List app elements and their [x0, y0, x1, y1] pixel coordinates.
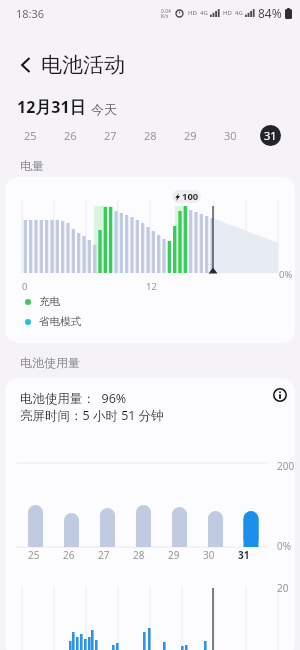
button[interactable]: Info — [267, 382, 293, 408]
staticText: 31 — [264, 128, 277, 143]
staticText: 25 — [28, 548, 40, 562]
staticText: 亮屏时间：5 小时 51 分钟 — [20, 407, 164, 424]
staticText: 0% — [279, 268, 293, 281]
staticText: 27 — [104, 128, 117, 143]
button[interactable]: 27 — [90, 122, 130, 148]
button[interactable]: Back — [14, 52, 36, 78]
staticText: 100 — [182, 190, 199, 203]
staticText: 200 — [277, 459, 295, 473]
button[interactable]: 28 — [130, 122, 170, 148]
staticText: 31 — [238, 548, 250, 562]
button[interactable]: 29 — [170, 122, 210, 148]
staticText: 12月31日 — [17, 96, 86, 118]
button[interactable]: 26 — [50, 122, 90, 148]
staticText: 0% — [277, 539, 292, 553]
staticText: 18:36 — [16, 6, 45, 21]
staticText: 0.04 K/s — [161, 8, 171, 19]
staticText: 26 — [63, 548, 75, 562]
staticText: HD — [188, 9, 197, 17]
staticText: 27 — [98, 548, 110, 562]
staticText: HD — [223, 9, 232, 17]
button[interactable]: 30 — [210, 122, 250, 148]
staticText: 28 — [133, 548, 145, 562]
staticText: 30 — [203, 548, 215, 562]
staticText: 4G — [235, 9, 243, 17]
staticText: 充电 — [39, 295, 60, 308]
button[interactable]: 25 — [10, 122, 50, 148]
staticText: 25 — [24, 128, 37, 143]
staticText: 电池使用量 — [20, 355, 80, 370]
staticText: 29 — [168, 548, 180, 562]
staticText: 12 — [146, 280, 157, 293]
staticText: 电池使用量： 96% — [20, 390, 127, 407]
button[interactable]: 31 — [250, 122, 290, 148]
staticText: 0 — [22, 280, 28, 293]
staticText: 电池活动 — [41, 52, 125, 78]
staticText: 26 — [64, 128, 77, 143]
staticText: 4G — [200, 9, 208, 17]
staticText: 今天 — [91, 101, 117, 117]
staticText: 20 — [277, 581, 289, 595]
staticText: 29 — [184, 128, 197, 143]
staticText: 省电模式 — [39, 315, 81, 328]
staticText: 28 — [144, 128, 157, 143]
staticText: 电量 — [20, 158, 44, 173]
staticText: 30 — [224, 128, 237, 143]
staticText: 84% — [258, 5, 282, 21]
